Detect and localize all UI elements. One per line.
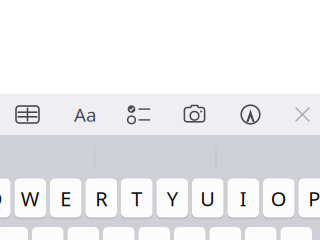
button[interactable]: Camera xyxy=(174,94,215,135)
staticText: W xyxy=(21,185,40,212)
button[interactable]: G xyxy=(138,227,170,240)
button[interactable]: E xyxy=(50,178,81,219)
button[interactable]: O xyxy=(263,178,294,219)
button[interactable]: R xyxy=(85,178,117,219)
staticText: E xyxy=(60,185,71,212)
button[interactable]: J xyxy=(209,227,241,240)
button[interactable]: A xyxy=(0,227,28,240)
staticText: P xyxy=(308,185,320,212)
staticText: Y xyxy=(167,185,178,212)
button[interactable]: D xyxy=(67,227,99,240)
staticText: Q xyxy=(0,185,3,212)
button[interactable]: P xyxy=(298,178,320,219)
button[interactable]: U xyxy=(192,178,223,219)
button[interactable]: F xyxy=(103,227,134,240)
staticText: I xyxy=(240,185,247,212)
button[interactable]: Y xyxy=(156,178,188,219)
button[interactable]: Checklist xyxy=(118,94,159,135)
button[interactable]: I xyxy=(227,178,259,219)
button[interactable]: H xyxy=(174,227,205,240)
button[interactable]: Markup xyxy=(230,94,271,135)
button[interactable]: S xyxy=(32,227,63,240)
button[interactable]: T xyxy=(121,178,152,219)
staticText: O xyxy=(271,185,287,212)
staticText: U xyxy=(200,185,215,212)
button[interactable]: K xyxy=(245,227,276,240)
button[interactable]: Q xyxy=(0,178,10,219)
button[interactable]: L xyxy=(280,227,312,240)
staticText: T xyxy=(131,185,142,212)
button[interactable]: W xyxy=(14,178,46,219)
staticText: Aa xyxy=(74,102,96,127)
button[interactable]: Close keyboard xyxy=(282,94,320,135)
button[interactable]: Text formatting xyxy=(64,94,105,135)
staticText: R xyxy=(95,185,107,212)
button[interactable]: Insert table xyxy=(7,94,48,135)
